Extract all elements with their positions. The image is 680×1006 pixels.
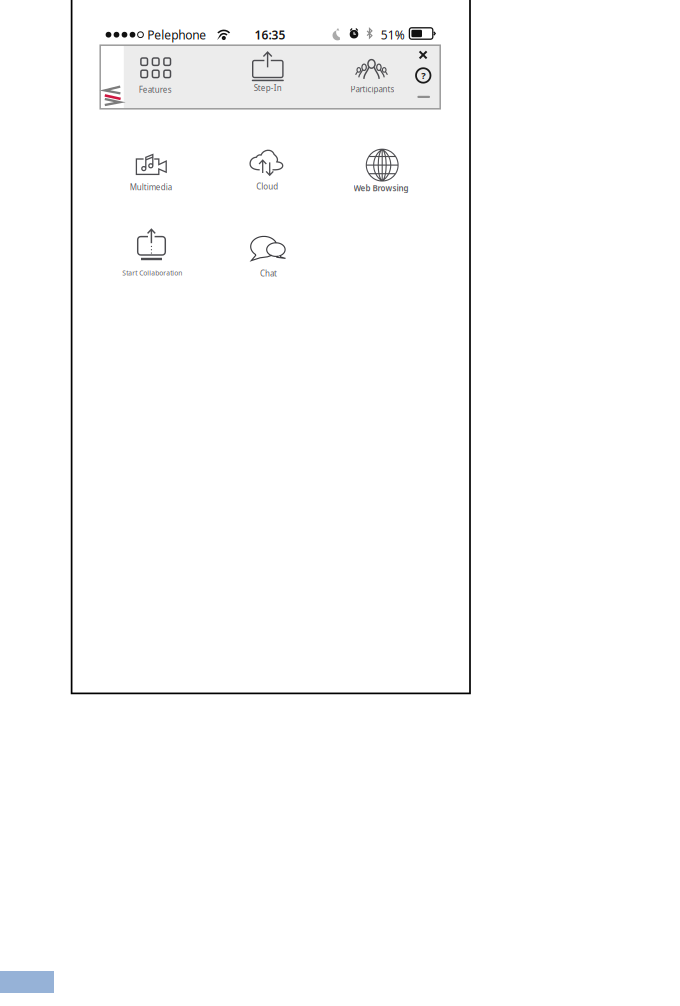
staticText: Step-In: [254, 83, 282, 93]
staticText: Features: [139, 84, 172, 95]
staticText: Chat: [260, 268, 277, 279]
staticText: Participants: [350, 84, 394, 94]
button[interactable]: Close: [419, 50, 428, 59]
staticText: 16:35: [255, 27, 286, 43]
button[interactable]: Start Collaboration: [121, 229, 183, 275]
button[interactable]: Chat: [248, 236, 288, 278]
button[interactable]: Web Browsing: [352, 149, 412, 197]
staticText: ?: [421, 69, 425, 82]
staticText: Multimedia: [130, 182, 172, 192]
staticText: Pelephone: [147, 27, 206, 43]
staticText: Cloud: [256, 181, 278, 192]
button[interactable]: Multimedia: [129, 153, 175, 193]
staticText: Start Collaboration: [122, 268, 182, 277]
staticText: Web Browsing: [354, 183, 409, 193]
button[interactable]: Features: [132, 58, 180, 93]
button[interactable]: Cloud: [243, 149, 289, 191]
button[interactable]: Help: [416, 68, 430, 83]
button[interactable]: Minimize: [417, 96, 430, 98]
button[interactable]: Participants: [347, 58, 395, 93]
staticText: 51%: [381, 27, 405, 43]
button[interactable]: Step-In: [244, 51, 292, 89]
